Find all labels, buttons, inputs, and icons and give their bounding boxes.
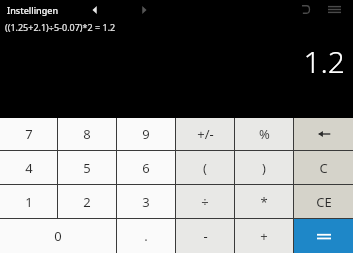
- button[interactable]: 5: [58, 151, 116, 184]
- staticText: 4: [25, 159, 33, 177]
- staticText: -: [203, 227, 208, 245]
- button[interactable]: Menu: [321, 0, 347, 19]
- staticText: ((1.25+2.1)÷5-0.07)*2 = 1.2: [5, 21, 116, 33]
- staticText: ): [262, 159, 266, 177]
- button[interactable]: C: [294, 151, 353, 184]
- button[interactable]: *: [235, 185, 293, 218]
- staticText: 1.2: [303, 41, 345, 82]
- button[interactable]: Volgende: [133, 0, 155, 19]
- button[interactable]: 4: [0, 151, 57, 184]
- staticText: C: [319, 159, 328, 177]
- staticText: +/-: [197, 125, 214, 143]
- staticText: +: [260, 227, 268, 245]
- button[interactable]: ): [235, 151, 293, 184]
- staticText: 9: [142, 125, 150, 143]
- staticText: .: [144, 227, 148, 245]
- button[interactable]: %: [235, 118, 293, 150]
- button[interactable]: -: [176, 219, 234, 253]
- button[interactable]: Instellingen: [0, 2, 65, 18]
- staticText: 7: [25, 125, 33, 143]
- button[interactable]: 8: [58, 118, 116, 150]
- button[interactable]: ÷: [176, 185, 234, 218]
- button[interactable]: +: [235, 219, 293, 253]
- staticText: 0: [54, 227, 62, 245]
- staticText: 3: [142, 193, 150, 211]
- button[interactable]: CE: [294, 185, 353, 218]
- staticText: 1: [25, 193, 33, 211]
- staticText: 2: [83, 193, 91, 211]
- staticText: 5: [83, 159, 91, 177]
- staticText: ÷: [201, 193, 209, 211]
- button[interactable]: +/-: [176, 118, 234, 150]
- staticText: *: [260, 193, 268, 211]
- staticText: 8: [83, 125, 91, 143]
- staticText: 6: [142, 159, 150, 177]
- button[interactable]: Vorige: [84, 0, 106, 19]
- staticText: %: [259, 125, 270, 143]
- button[interactable]: 2: [58, 185, 116, 218]
- button[interactable]: Is gelijk aan: [294, 219, 353, 253]
- button[interactable]: 3: [117, 185, 175, 218]
- button[interactable]: 9: [117, 118, 175, 150]
- staticText: (: [203, 159, 207, 177]
- button[interactable]: .: [117, 219, 175, 253]
- button[interactable]: (: [176, 151, 234, 184]
- button[interactable]: 7: [0, 118, 57, 150]
- staticText: Instellingen: [7, 4, 59, 16]
- button[interactable]: Ongedaan maken: [293, 0, 317, 19]
- button[interactable]: 0: [0, 219, 116, 253]
- button[interactable]: 6: [117, 151, 175, 184]
- button[interactable]: 1: [0, 185, 57, 218]
- staticText: CE: [316, 193, 332, 211]
- button[interactable]: Backspace: [294, 118, 353, 150]
